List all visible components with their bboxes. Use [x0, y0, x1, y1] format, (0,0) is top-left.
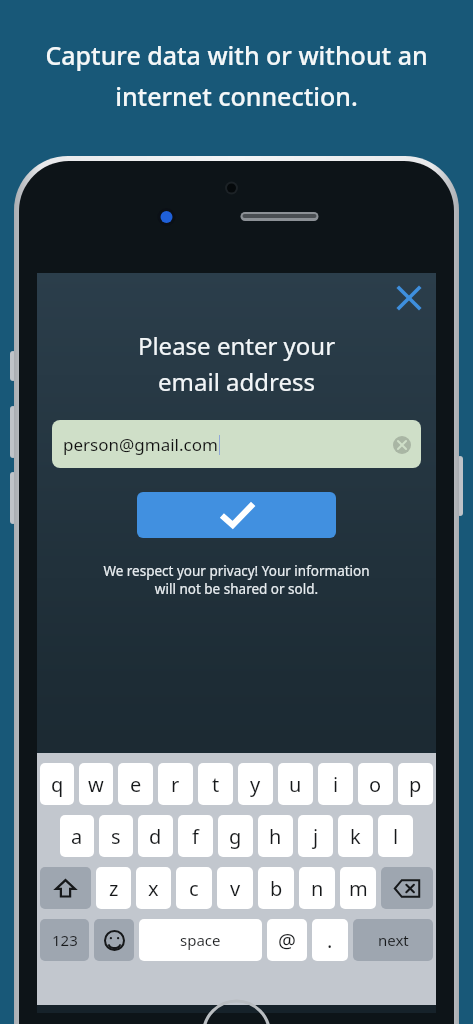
staticText: will not be shared or sold.	[51, 580, 422, 598]
button[interactable]: q	[40, 763, 74, 805]
staticText: x	[148, 875, 159, 902]
button[interactable]: w	[79, 763, 113, 805]
staticText: internet connection.	[22, 79, 451, 113]
button[interactable]: y	[238, 763, 273, 805]
staticText: k	[350, 823, 361, 850]
staticText: space	[180, 930, 221, 950]
button[interactable]: g	[218, 815, 253, 857]
staticText: l	[393, 823, 399, 850]
button[interactable]: i	[318, 763, 353, 805]
staticText: f	[192, 823, 199, 850]
staticText: 123	[52, 930, 78, 950]
staticText: y	[250, 771, 261, 798]
staticText: v	[230, 875, 241, 902]
button[interactable]: person@gmail.com	[52, 420, 421, 468]
staticText: w	[88, 771, 104, 798]
button[interactable]: n	[299, 867, 335, 909]
staticText: h	[269, 823, 282, 850]
button[interactable]: r	[158, 763, 193, 805]
staticText: person@gmail.com	[63, 433, 218, 456]
button[interactable]: j	[298, 815, 333, 857]
button[interactable]: l	[378, 815, 413, 857]
staticText: e	[130, 771, 142, 798]
button[interactable]: z	[96, 867, 131, 909]
button[interactable]: b	[258, 867, 294, 909]
button[interactable]: m	[340, 867, 376, 909]
staticText: c	[189, 875, 199, 902]
staticText: p	[409, 771, 422, 798]
button[interactable]: Confirm	[137, 492, 336, 538]
button[interactable]: d	[138, 815, 173, 857]
button[interactable]: Shift	[40, 867, 91, 909]
button[interactable]: s	[99, 815, 133, 857]
button[interactable]: 123	[40, 919, 89, 961]
staticText: email address	[37, 365, 436, 398]
staticText: @	[278, 927, 296, 954]
button[interactable]: c	[176, 867, 212, 909]
staticText: s	[111, 823, 121, 850]
button[interactable]: u	[278, 763, 313, 805]
button[interactable]: space	[139, 919, 262, 961]
button[interactable]: t	[198, 763, 233, 805]
button[interactable]: o	[358, 763, 393, 805]
staticText: a	[71, 823, 83, 850]
button[interactable]: .	[312, 919, 348, 961]
button[interactable]: x	[136, 867, 171, 909]
button[interactable]: Backspace	[381, 867, 433, 909]
button[interactable]: h	[258, 815, 293, 857]
staticText: Capture data with or without an	[22, 38, 451, 72]
button[interactable]: Emoji	[94, 919, 134, 961]
staticText: Please enter your	[37, 329, 436, 362]
staticText: z	[109, 875, 119, 902]
staticText: t	[212, 771, 220, 798]
button[interactable]: e	[118, 763, 153, 805]
button[interactable]: @	[267, 919, 307, 961]
staticText: We respect your privacy! Your informatio…	[51, 562, 422, 580]
button[interactable]: a	[60, 815, 94, 857]
staticText: u	[289, 771, 302, 798]
staticText: i	[333, 771, 339, 798]
button[interactable]: v	[217, 867, 253, 909]
staticText: .	[327, 927, 333, 954]
staticText: next	[378, 930, 409, 950]
staticText: n	[311, 875, 324, 902]
staticText: d	[149, 823, 162, 850]
button[interactable]: f	[178, 815, 213, 857]
staticText: m	[349, 875, 368, 902]
button[interactable]: k	[338, 815, 373, 857]
staticText: r	[171, 771, 180, 798]
staticText: q	[51, 771, 64, 798]
staticText: o	[369, 771, 382, 798]
staticText: g	[229, 823, 242, 850]
button[interactable]: Close	[390, 279, 428, 317]
button[interactable]: next	[353, 919, 433, 961]
staticText: b	[270, 875, 283, 902]
button[interactable]: Clear text	[393, 436, 411, 454]
staticText: j	[313, 823, 319, 850]
button[interactable]: p	[398, 763, 433, 805]
